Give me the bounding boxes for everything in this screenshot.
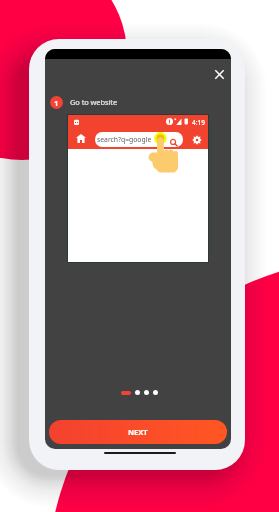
button[interactable]: 1: [50, 94, 118, 110]
staticText: 4:19: [192, 118, 205, 127]
button[interactable]: search?q=google: [95, 132, 183, 147]
staticText: Go to website: [70, 97, 118, 107]
button[interactable]: NEXT: [49, 420, 227, 444]
button[interactable]: Close: [208, 63, 230, 85]
staticText: NEXT: [128, 427, 148, 437]
staticText: 1: [54, 98, 59, 108]
staticText: search?q=google: [97, 135, 152, 144]
button[interactable]: Settings: [187, 130, 206, 149]
button[interactable]: Home: [71, 129, 90, 148]
